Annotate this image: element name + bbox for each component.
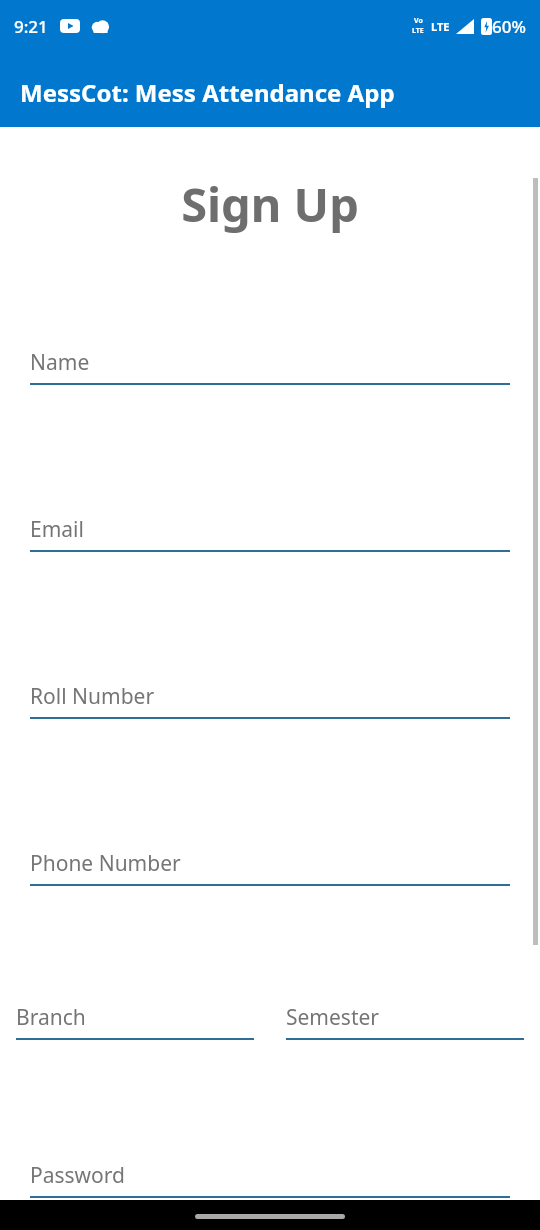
staticText: 9:21 <box>14 15 48 38</box>
staticText: Sign Up <box>0 172 540 236</box>
staticText: Semester <box>286 1003 380 1032</box>
staticText: Phone Number <box>30 849 181 878</box>
staticText: LTE <box>412 26 424 36</box>
button[interactable]: Home gesture handle <box>195 1214 345 1219</box>
staticText: 60% <box>492 15 526 38</box>
button[interactable]: Phone Number <box>30 842 510 886</box>
staticText: MessCot: Mess Attendance App <box>20 76 395 109</box>
button[interactable]: Roll Number <box>30 675 510 719</box>
button[interactable]: Name <box>30 341 510 385</box>
button[interactable]: Email <box>30 508 510 552</box>
staticText: Email <box>30 515 84 544</box>
button[interactable]: Semester <box>286 996 524 1040</box>
staticText: Password <box>30 1161 125 1190</box>
staticText: Vo <box>414 16 423 26</box>
button[interactable]: Branch <box>16 996 254 1040</box>
staticText: Roll Number <box>30 682 155 711</box>
button[interactable]: Password <box>30 1154 510 1198</box>
staticText: Branch <box>16 1003 86 1032</box>
staticText: Name <box>30 348 90 377</box>
staticText: LTE <box>431 19 450 34</box>
